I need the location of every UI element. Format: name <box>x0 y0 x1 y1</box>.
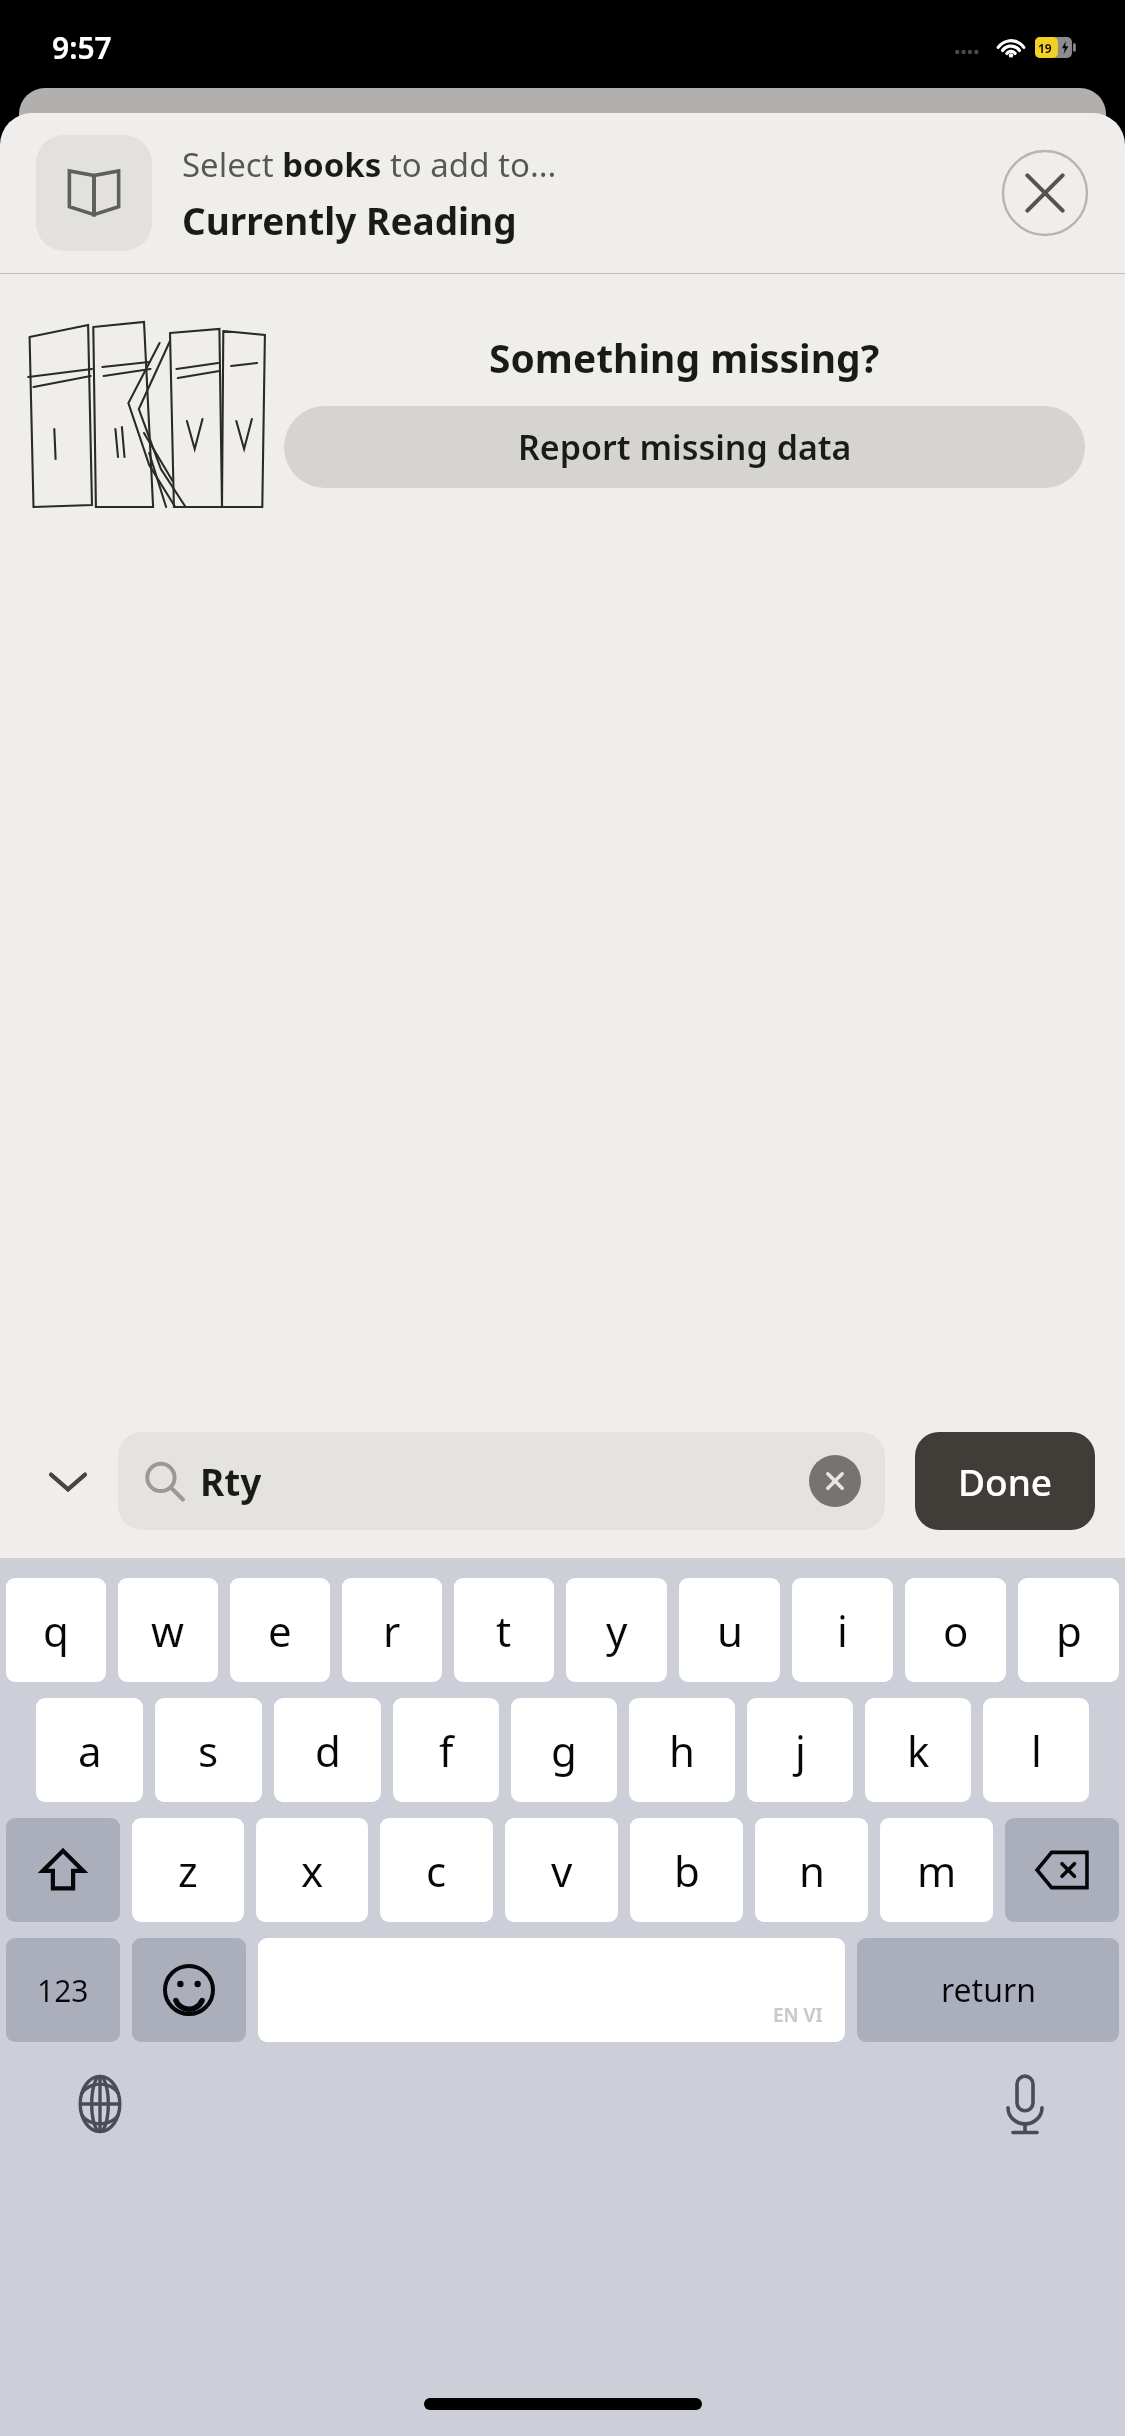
button[interactable]: c <box>380 1818 493 1922</box>
staticText: t <box>496 1602 512 1659</box>
button[interactable]: t <box>454 1578 554 1682</box>
staticText: b <box>674 1842 700 1899</box>
button[interactable]: u <box>679 1578 780 1682</box>
button[interactable]: 123 <box>6 1938 120 2042</box>
button[interactable]: r <box>342 1578 442 1682</box>
staticText: EN VI <box>773 2002 823 2028</box>
button[interactable]: Change keyboard <box>62 2066 138 2142</box>
button[interactable]: Emoji <box>132 1938 246 2042</box>
staticText: o <box>943 1602 969 1659</box>
button[interactable]: z <box>132 1818 244 1922</box>
staticText: Report missing data <box>518 424 852 470</box>
staticText: a <box>78 1722 102 1779</box>
staticText: s <box>198 1722 219 1779</box>
staticText: l <box>1031 1722 1042 1779</box>
button[interactable]: d <box>274 1698 381 1802</box>
button[interactable]: m <box>880 1818 993 1922</box>
button[interactable]: s <box>155 1698 262 1802</box>
button[interactable]: e <box>230 1578 330 1682</box>
staticText: q <box>43 1602 69 1659</box>
staticText: u <box>717 1602 743 1659</box>
staticText: z <box>178 1842 198 1899</box>
button[interactable]: q <box>6 1578 106 1682</box>
button[interactable]: b <box>630 1818 743 1922</box>
button[interactable]: y <box>566 1578 667 1682</box>
staticText: w <box>151 1602 185 1659</box>
button[interactable]: Close <box>1001 149 1089 237</box>
button[interactable]: k <box>865 1698 971 1802</box>
staticText: d <box>315 1722 341 1779</box>
staticText: m <box>917 1842 957 1899</box>
staticText: Something missing? <box>489 331 880 384</box>
staticText: i <box>837 1602 848 1659</box>
staticText: e <box>268 1602 292 1659</box>
staticText: x <box>301 1842 324 1899</box>
button[interactable]: j <box>747 1698 853 1802</box>
button[interactable]: x <box>256 1818 368 1922</box>
button[interactable]: Clear text <box>809 1455 861 1507</box>
button[interactable]: i <box>792 1578 893 1682</box>
button[interactable]: g <box>511 1698 617 1802</box>
staticText: c <box>426 1842 447 1899</box>
button[interactable]: p <box>1018 1578 1119 1682</box>
button[interactable]: n <box>755 1818 868 1922</box>
button[interactable]: Backspace <box>1005 1818 1119 1922</box>
button[interactable]: Collapse <box>30 1443 106 1519</box>
button[interactable]: Report missing data <box>284 406 1085 488</box>
staticText: h <box>669 1722 695 1779</box>
staticText: 19 <box>1038 40 1052 56</box>
button[interactable]: Shift <box>6 1818 120 1922</box>
button[interactable]: a <box>36 1698 143 1802</box>
staticText: j <box>795 1722 806 1779</box>
button[interactable]: l <box>983 1698 1089 1802</box>
button[interactable] <box>36 135 152 251</box>
staticText: g <box>551 1722 577 1779</box>
staticText: 9:57 <box>52 27 112 68</box>
button[interactable]: o <box>905 1578 1006 1682</box>
staticText: Rty <box>200 1456 809 1506</box>
button[interactable]: Rty <box>118 1432 885 1530</box>
staticText: p <box>1056 1602 1082 1659</box>
staticText: Select books to add to... <box>182 142 557 187</box>
staticText: return <box>941 1968 1036 2012</box>
button[interactable]: v <box>505 1818 618 1922</box>
staticText: Done <box>958 1456 1053 1506</box>
button[interactable]: Done <box>915 1432 1095 1530</box>
button[interactable]: h <box>629 1698 735 1802</box>
staticText: v <box>551 1842 573 1899</box>
staticText: Currently Reading <box>182 195 517 245</box>
staticText: 123 <box>37 1970 89 2011</box>
staticText: y <box>606 1602 628 1659</box>
button[interactable]: Dictate <box>987 2066 1063 2142</box>
staticText: f <box>439 1722 454 1779</box>
button[interactable]: f <box>393 1698 499 1802</box>
staticText: k <box>907 1722 930 1779</box>
staticText: r <box>383 1602 401 1659</box>
button[interactable]: return <box>857 1938 1119 2042</box>
button[interactable]: w <box>118 1578 218 1682</box>
button[interactable]: Space <box>258 1938 845 2042</box>
staticText: n <box>799 1842 825 1899</box>
